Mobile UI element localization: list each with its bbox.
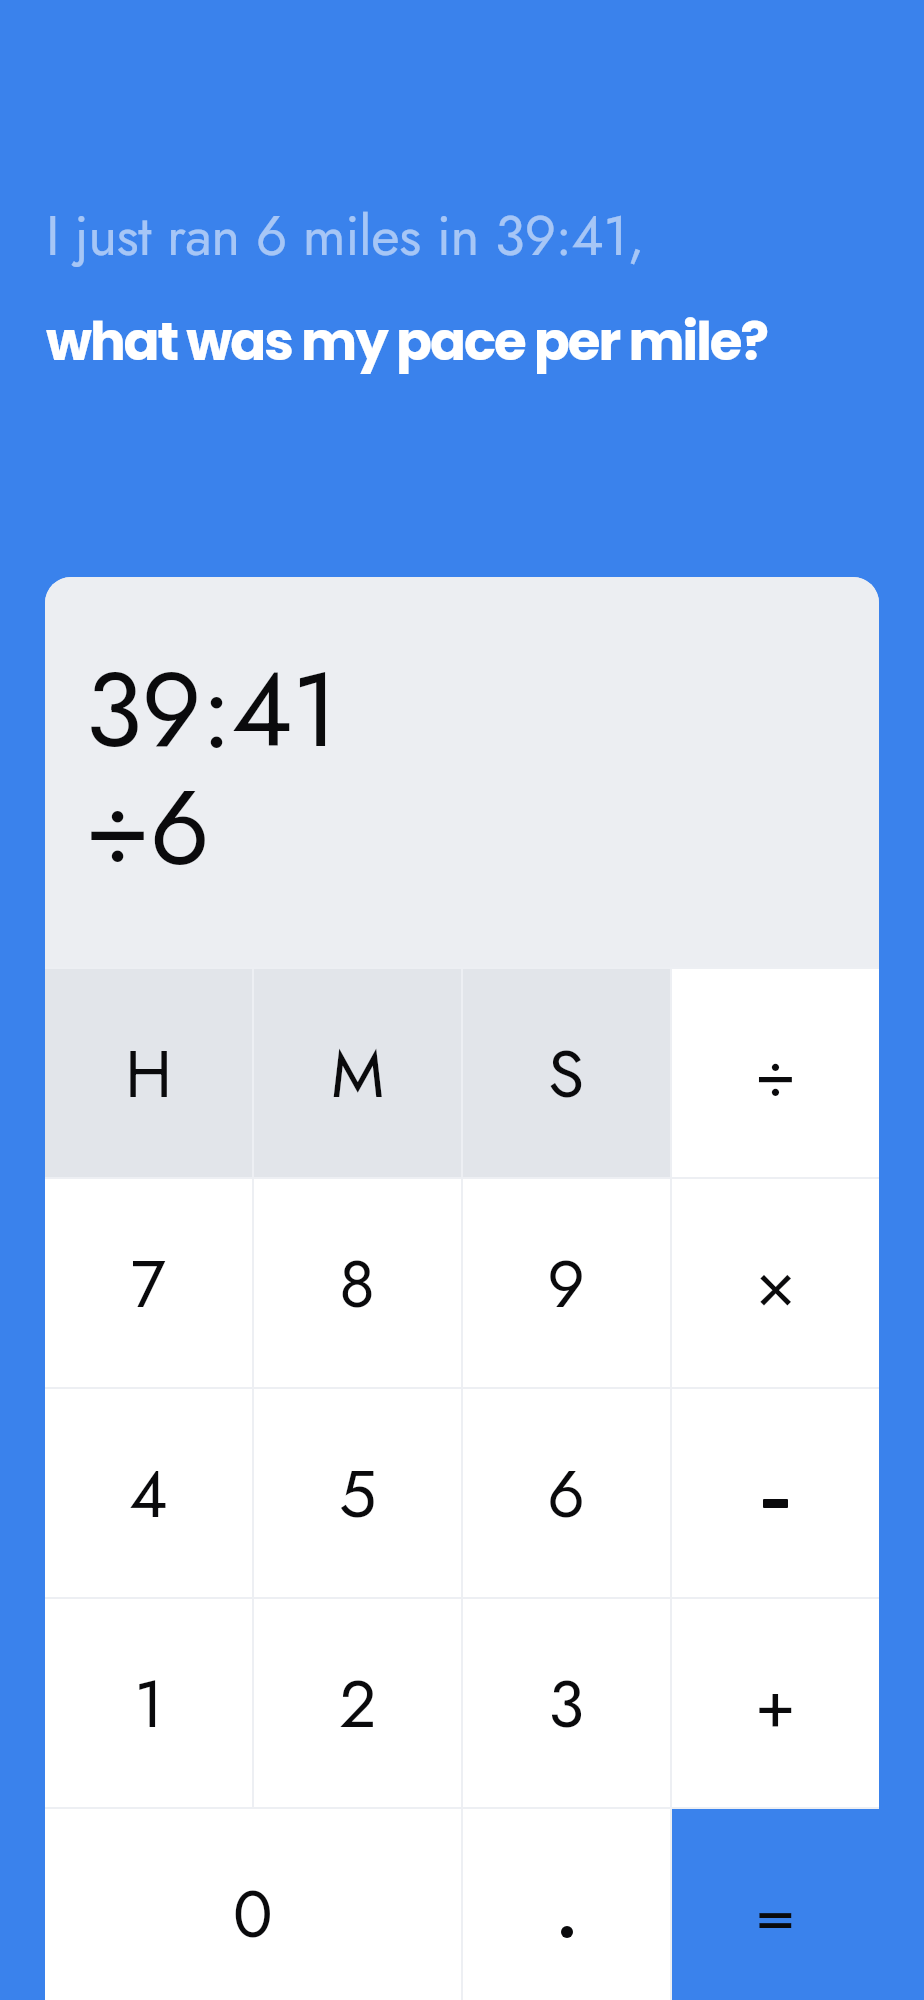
button[interactable]: × <box>672 1179 879 1387</box>
button[interactable]: S <box>463 969 670 1177</box>
staticText: + <box>755 1656 796 1751</box>
staticText: 5 <box>339 1446 377 1541</box>
button[interactable]: 8 <box>254 1179 461 1387</box>
button[interactable]: 2 <box>254 1599 461 1807</box>
staticText: 4 <box>129 1446 168 1541</box>
button[interactable]: 0 <box>45 1809 461 2000</box>
staticText: 6 <box>547 1446 586 1541</box>
button[interactable]: M <box>254 969 461 1177</box>
staticText: 39:41 ÷6 <box>85 634 338 904</box>
staticText: 1 <box>134 1656 164 1751</box>
staticText: ÷ <box>755 1026 797 1121</box>
staticText: M <box>331 1026 385 1121</box>
button[interactable]: 5 <box>254 1389 461 1597</box>
staticText: what was my pace per mile? <box>46 304 767 378</box>
button[interactable] <box>672 1389 879 1597</box>
button[interactable]: + <box>672 1599 879 1807</box>
button[interactable]: 7 <box>45 1179 252 1387</box>
staticText: 9 <box>547 1236 586 1331</box>
staticText: 8 <box>339 1236 376 1331</box>
button[interactable]: 6 <box>463 1389 670 1597</box>
staticText: × <box>756 1236 796 1331</box>
button[interactable]: 3 <box>463 1599 670 1807</box>
staticText: 0 <box>233 1866 273 1961</box>
button[interactable]: 4 <box>45 1389 252 1597</box>
button[interactable]: = <box>672 1809 879 2000</box>
button[interactable]: 9 <box>463 1179 670 1387</box>
staticText: H <box>125 1026 173 1121</box>
staticText: 7 <box>131 1236 166 1331</box>
button[interactable]: H <box>45 969 252 1177</box>
staticText: 3 <box>548 1656 585 1751</box>
staticText: S <box>548 1026 585 1121</box>
button[interactable] <box>463 1809 670 2000</box>
button[interactable]: 1 <box>45 1599 252 1807</box>
button[interactable]: ÷ <box>672 969 879 1177</box>
staticText: I just ran 6 miles in 39:41, <box>46 196 644 275</box>
staticText: = <box>755 1866 796 1961</box>
staticText: 2 <box>339 1656 377 1751</box>
